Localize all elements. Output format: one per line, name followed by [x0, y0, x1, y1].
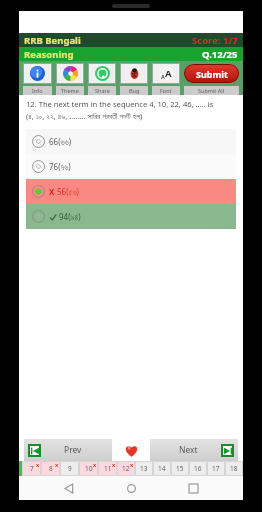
staticText: A [165, 67, 172, 80]
button[interactable]: Theme [56, 86, 84, 95]
button[interactable]: 13 [135, 461, 153, 476]
staticText: RRB Bengali [24, 34, 81, 47]
staticText: A [161, 73, 165, 80]
staticText: 66(৬৬) [49, 136, 72, 147]
button[interactable]: 17 [207, 461, 225, 476]
button[interactable]: 7 [22, 461, 41, 476]
staticText: 13 [140, 464, 148, 473]
staticText: x [93, 461, 97, 468]
staticText: 17 [212, 464, 220, 473]
staticText: x [130, 461, 134, 468]
button[interactable]: 76(৭৬) [32, 154, 230, 179]
staticText: 7 [30, 464, 34, 473]
button[interactable]: 12 [117, 461, 135, 476]
staticText: Reasoning [24, 48, 74, 61]
staticText: 9 [68, 464, 72, 473]
staticText: Q.12/25 [202, 48, 238, 61]
staticText: x [112, 461, 116, 468]
staticText: 94(৯৪) [59, 211, 81, 222]
staticText: 11 [104, 464, 112, 473]
button[interactable]: Recents [181, 476, 205, 500]
staticText: Submit [196, 68, 228, 80]
staticText: 16 [194, 464, 202, 473]
button[interactable]: Info [23, 86, 52, 95]
button[interactable]: 16 [189, 461, 207, 476]
staticText: Share [95, 87, 110, 94]
button[interactable]: Bug [120, 63, 148, 84]
button[interactable]: Info [23, 63, 52, 84]
staticText: Next [179, 444, 198, 456]
staticText: 15 [176, 464, 184, 473]
staticText: 18 [230, 464, 238, 473]
button[interactable]: X [32, 179, 230, 204]
staticText: 76(৭৬) [49, 161, 71, 172]
button[interactable]: Next [154, 439, 234, 461]
button[interactable]: Back [57, 476, 81, 500]
staticText: x [36, 461, 40, 468]
staticText: 56(৫৬) [57, 186, 79, 197]
staticText: X [49, 186, 57, 197]
staticText: x [55, 461, 59, 468]
button[interactable]: 11 [98, 461, 117, 476]
staticText: 12. The next term in the sequence 4, 10,… [26, 99, 214, 109]
staticText: Theme [61, 87, 79, 94]
button[interactable]: 94(৯৪) [32, 204, 230, 229]
button[interactable]: Share [88, 63, 116, 84]
staticText: 12 [122, 464, 130, 473]
button[interactable]: 10 [79, 461, 98, 476]
button[interactable]: 8 [41, 461, 60, 476]
button[interactable]: Submit [184, 64, 239, 83]
button[interactable]: 18 [225, 461, 243, 476]
button[interactable]: Font [152, 86, 180, 95]
button[interactable]: Home [119, 476, 143, 500]
staticText: Prev [64, 444, 82, 456]
button[interactable]: Share [88, 86, 116, 95]
button[interactable]: Bug [120, 86, 148, 95]
staticText: 14 [158, 464, 166, 473]
button[interactable]: Prev [28, 439, 108, 461]
button[interactable]: 14 [153, 461, 171, 476]
button[interactable]: Theme [56, 63, 84, 84]
button[interactable]: 9 [60, 461, 79, 476]
button[interactable]: Favourite [112, 439, 150, 461]
button[interactable]: 15 [171, 461, 189, 476]
staticText: Bug [129, 87, 140, 94]
staticText: 10 [85, 464, 93, 473]
staticText: 8 [49, 464, 53, 473]
staticText: Font [160, 87, 172, 94]
staticText: Score: 1/7 [192, 34, 238, 47]
button[interactable]: Font [152, 63, 180, 84]
button[interactable]: Submit All [184, 86, 239, 95]
staticText: Submit All [198, 87, 225, 94]
staticText: (৪, ১০, ২২, ৪৬, ........ সারির পরবর্তী প… [26, 111, 143, 121]
staticText: Info [32, 87, 43, 94]
button[interactable]: 66(৬৬) [32, 129, 230, 154]
